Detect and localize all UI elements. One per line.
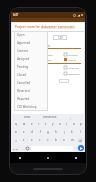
- staticText: 120: [58, 36, 63, 40]
- button[interactable]: Back: [18, 156, 22, 160]
- button[interactable]: h: [52, 128, 60, 136]
- staticText: k: [71, 130, 73, 134]
- button[interactable]: l: [76, 128, 84, 136]
- staticText: ok: [63, 80, 66, 83]
- button[interactable]: sione: [24, 115, 31, 119]
- staticText: h: [55, 130, 57, 134]
- staticText: ?123: [13, 147, 19, 150]
- button[interactable]: CDI Workshop: [14, 103, 48, 111]
- button[interactable]: j: [60, 128, 68, 136]
- staticText: l: [80, 130, 81, 134]
- button[interactable]: Open: [14, 31, 48, 39]
- button[interactable]: conversion: [43, 115, 57, 119]
- staticText: ⋮: [69, 116, 72, 119]
- staticText: Approved: [17, 41, 31, 45]
- staticText: CDI Workshop: [17, 105, 37, 109]
- button[interactable]: f: [36, 128, 44, 136]
- button[interactable]: Cancelled: [14, 79, 48, 87]
- button[interactable]: u: [56, 120, 63, 128]
- button[interactable]: x: [28, 136, 36, 144]
- staticText: Project room for: [15, 25, 41, 29]
- button[interactable]: b: [52, 136, 60, 144]
- button[interactable]: Approved: [14, 39, 48, 47]
- staticText: g: [47, 130, 49, 134]
- staticText: j: [64, 130, 65, 134]
- button[interactable]: g: [44, 128, 52, 136]
- button[interactable]: Project room for: [15, 25, 82, 29]
- staticText: y: [52, 122, 54, 126]
- staticText: s: [23, 130, 25, 134]
- button[interactable]: sage: [46, 58, 81, 61]
- staticText: 6:47: [13, 13, 19, 17]
- button[interactable]: s: [20, 128, 28, 136]
- staticText: Pending: [17, 65, 29, 69]
- staticText: f: [40, 130, 41, 134]
- staticText: Assigned: [17, 57, 30, 61]
- staticText: Required: [17, 97, 30, 101]
- staticText: a: [15, 130, 17, 134]
- button[interactable]: Analysed: [46, 66, 81, 69]
- staticText: v: [47, 138, 49, 142]
- button[interactable]: ?123: [12, 147, 20, 150]
- button[interactable]: Recents: [74, 156, 78, 160]
- button[interactable]: a tent: [46, 53, 81, 56]
- staticText: dubcenter: [41, 25, 57, 29]
- staticText: d: [31, 130, 33, 134]
- button[interactable]: y: [49, 120, 56, 128]
- staticText: i: [66, 122, 67, 126]
- staticText: Open: [17, 33, 25, 37]
- button[interactable]: Required: [14, 95, 48, 103]
- button[interactable]: i: [63, 120, 70, 128]
- staticText: Content: [17, 49, 28, 53]
- button[interactable]: v: [44, 136, 52, 144]
- staticText: ⌫: [78, 139, 83, 142]
- staticText: w: [23, 122, 26, 126]
- button[interactable]: Emoji: [25, 147, 30, 150]
- button[interactable]: c: [36, 136, 44, 144]
- button[interactable]: Closed: [14, 71, 48, 79]
- button[interactable]: Molecular: [46, 72, 81, 75]
- staticText: ,: [22, 146, 23, 150]
- button[interactable]: z: [20, 136, 28, 144]
- staticText: Closed: [17, 73, 27, 77]
- button[interactable]: Home: [46, 156, 50, 160]
- button[interactable]: p: [77, 120, 84, 128]
- button[interactable]: e: [28, 120, 35, 128]
- button[interactable]: a: [12, 128, 20, 136]
- button[interactable]: Send: [78, 145, 84, 151]
- button[interactable]: Assigned: [14, 55, 48, 63]
- button[interactable]: Reserved: [14, 87, 48, 95]
- button[interactable]: q: [12, 120, 20, 128]
- button[interactable]: w: [20, 120, 28, 128]
- staticText: p: [80, 122, 82, 126]
- staticText: u: [59, 122, 61, 126]
- button[interactable]: o: [70, 120, 77, 128]
- button[interactable]: ok: [59, 79, 69, 83]
- staticText: sage: [46, 58, 52, 61]
- button[interactable]: .: [74, 146, 78, 150]
- button[interactable]: ,: [20, 146, 25, 150]
- button[interactable]: Pending: [14, 63, 48, 71]
- button[interactable]: k: [68, 128, 76, 136]
- button[interactable]: r: [35, 120, 42, 128]
- button[interactable]: ⇧: [12, 136, 20, 144]
- button[interactable]: t: [42, 120, 49, 128]
- staticText: m: [71, 138, 74, 142]
- staticText: conversion: [43, 115, 57, 119]
- button[interactable]: ⌫: [76, 136, 84, 144]
- staticText: x: [31, 138, 33, 142]
- staticText: Creative: [68, 53, 78, 56]
- button[interactable]: d: [28, 128, 36, 136]
- staticText: a tent: [46, 53, 53, 56]
- button[interactable]: Content: [14, 47, 48, 55]
- button[interactable]: m: [68, 136, 76, 144]
- staticText: q: [15, 122, 17, 126]
- button[interactable]: n: [60, 136, 68, 144]
- staticText: Find in: [68, 58, 76, 61]
- button[interactable]: More: [68, 115, 72, 119]
- button[interactable]: 120: [53, 35, 67, 40]
- staticText: ⇧: [15, 139, 18, 142]
- staticText: Cancelled: [17, 81, 31, 85]
